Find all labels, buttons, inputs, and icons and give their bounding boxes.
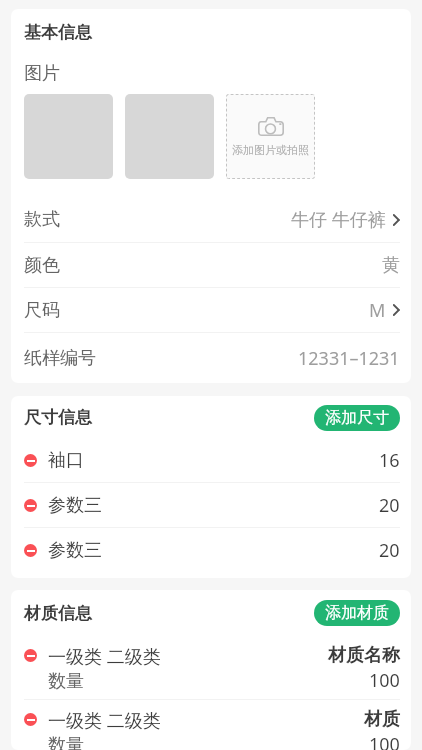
staticText: 材质信息 <box>24 603 92 624</box>
button[interactable]: Delete <box>11 636 411 699</box>
staticText: 颜色 <box>24 254 60 277</box>
staticText: 材质名称 <box>328 644 400 667</box>
staticText: 纸样编号 <box>24 347 96 370</box>
button[interactable]: 添加图片或拍照 <box>226 94 315 179</box>
staticText: 数量 <box>48 734 84 750</box>
other: More <box>391 213 400 227</box>
staticText: 12331–1231 <box>298 346 400 371</box>
staticText: 牛仔 牛仔裤 <box>291 207 386 232</box>
staticText: 款式 <box>24 208 60 231</box>
staticText: 参数三 <box>48 539 102 562</box>
staticText: 100 <box>369 732 400 750</box>
staticText: 一级类 二级类 <box>48 644 161 669</box>
button[interactable]: 款式 <box>11 197 411 242</box>
button[interactable]: Delete <box>24 499 37 512</box>
staticText: 添加图片或拍照 <box>232 143 309 157</box>
staticText: 16 <box>379 448 400 473</box>
staticText: 添加材质 <box>325 603 389 623</box>
staticText: 基本信息 <box>24 22 92 43</box>
staticText: 参数三 <box>48 494 102 517</box>
staticText: 黄 <box>382 254 400 277</box>
button[interactable]: 添加尺寸 <box>314 405 400 431</box>
button[interactable]: Delete <box>11 483 411 527</box>
button[interactable]: Delete <box>24 544 37 557</box>
button[interactable]: Delete <box>11 528 411 572</box>
staticText: 图片 <box>24 62 60 85</box>
staticText: 20 <box>379 538 400 563</box>
staticText: 尺寸信息 <box>24 407 92 428</box>
staticText: 20 <box>379 493 400 518</box>
other: More <box>391 303 400 317</box>
staticText: 添加尺寸 <box>325 408 389 428</box>
button[interactable]: Delete <box>24 649 37 662</box>
button[interactable]: Delete <box>11 700 411 750</box>
staticText: 袖口 <box>48 449 84 472</box>
staticText: 材质 <box>364 708 400 731</box>
staticText: 100 <box>369 668 400 693</box>
button[interactable]: Delete <box>24 454 37 467</box>
button[interactable]: 颜色 <box>11 243 411 287</box>
button[interactable]: 添加材质 <box>314 600 400 626</box>
staticText: 数量 <box>48 670 84 693</box>
staticText: 一级类 二级类 <box>48 708 161 733</box>
button[interactable]: Delete <box>11 439 411 482</box>
button[interactable]: Delete <box>24 713 37 726</box>
staticText: 尺码 <box>24 299 60 322</box>
button[interactable]: 尺码 <box>11 288 411 332</box>
staticText: M <box>369 298 386 323</box>
button[interactable]: 纸样编号 <box>11 333 411 383</box>
